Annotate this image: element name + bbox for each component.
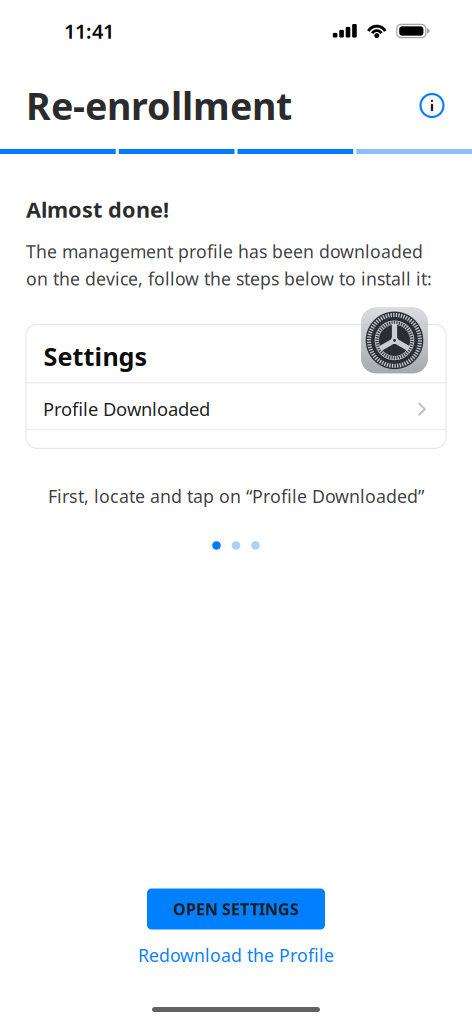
staticText: First, locate and tap on “Profile Downlo… — [48, 484, 424, 508]
button[interactable]: OPEN SETTINGS — [147, 888, 325, 929]
button[interactable]: Profile Downloaded — [26, 383, 446, 429]
button[interactable]: Redownload the Profile — [138, 933, 334, 977]
staticText: 11:41 — [64, 18, 114, 44]
staticText: OPEN SETTINGS — [173, 898, 299, 920]
staticText: Settings — [44, 340, 148, 373]
staticText: on the device, follow the steps below to… — [26, 267, 432, 290]
staticText: The management profile has been download… — [26, 240, 423, 263]
staticText: Re-enrollment — [26, 80, 292, 130]
staticText: Redownload the Profile — [138, 943, 334, 967]
button[interactable]: Information — [410, 83, 454, 127]
staticText: Almost done! — [26, 195, 169, 224]
staticText: Profile Downloaded — [43, 397, 210, 421]
